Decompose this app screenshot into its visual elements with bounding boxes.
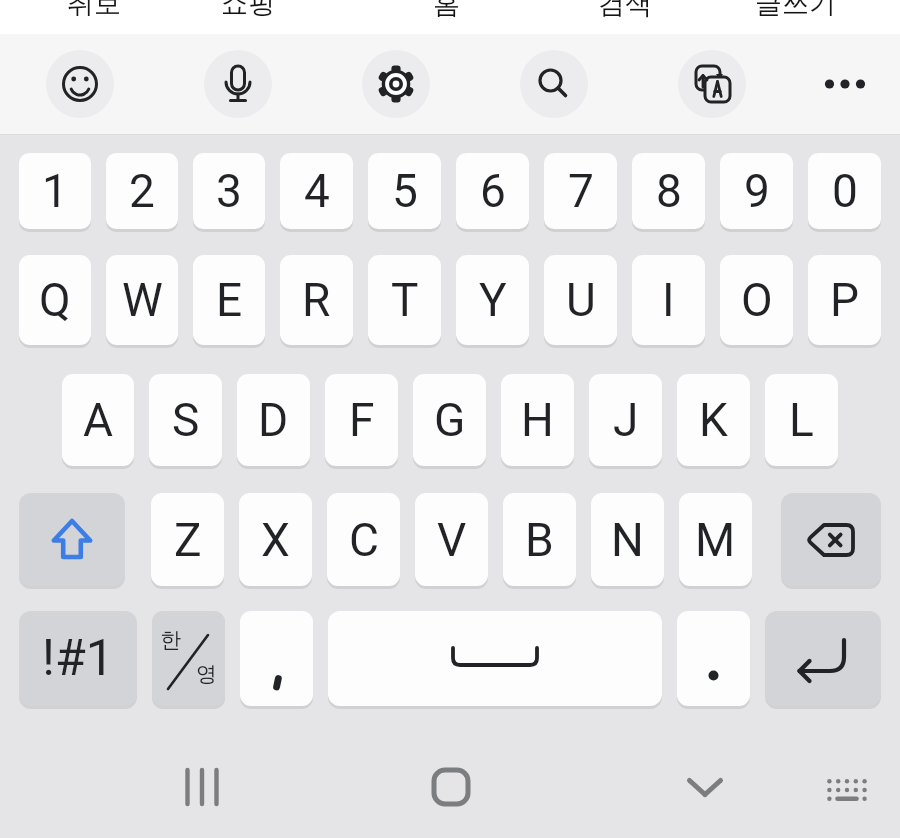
button[interactable]: 7 xyxy=(544,153,617,229)
staticText: 1 xyxy=(42,164,68,218)
button[interactable]: 4 xyxy=(280,153,353,229)
staticText: D xyxy=(258,393,289,447)
button[interactable]: Z xyxy=(151,493,224,586)
staticText: E xyxy=(216,273,243,327)
button[interactable]: M xyxy=(679,493,752,586)
button[interactable]: D xyxy=(237,374,310,466)
button[interactable]: 9 xyxy=(720,153,793,229)
staticText: H xyxy=(521,393,554,447)
staticText: 7 xyxy=(568,164,594,218)
staticText: 취보 xyxy=(67,0,121,21)
staticText: Z xyxy=(174,513,202,567)
button[interactable] xyxy=(328,611,662,706)
button[interactable]: J xyxy=(589,374,662,466)
button[interactable]: V xyxy=(415,493,488,586)
staticText: 2 xyxy=(129,164,155,218)
staticText: 영 xyxy=(196,661,217,687)
button[interactable] xyxy=(765,611,881,706)
button[interactable]: F xyxy=(325,374,398,466)
staticText: 9 xyxy=(744,164,770,218)
button[interactable]: C xyxy=(327,493,400,586)
staticText: F xyxy=(349,393,375,447)
button[interactable]: H xyxy=(501,374,574,466)
button[interactable]: G xyxy=(413,374,486,466)
staticText: N xyxy=(611,513,644,567)
staticText: 한 xyxy=(160,627,181,653)
button[interactable]: B xyxy=(503,493,576,586)
button[interactable]: K xyxy=(677,374,750,466)
button[interactable] xyxy=(675,757,735,817)
button[interactable]: 3 xyxy=(193,153,265,229)
staticText: U xyxy=(566,273,596,327)
button[interactable] xyxy=(204,50,272,118)
staticText: Y xyxy=(479,273,507,327)
staticText: 쇼핑 xyxy=(221,0,275,21)
button[interactable]: P xyxy=(808,255,881,345)
button[interactable]: O xyxy=(720,255,793,345)
button[interactable]: L xyxy=(765,374,838,466)
button[interactable]: 0 xyxy=(808,153,881,229)
button[interactable]: 6 xyxy=(456,153,529,229)
staticText: V xyxy=(437,513,467,567)
button[interactable] xyxy=(781,493,881,586)
staticText: 0 xyxy=(832,164,858,218)
staticText: 8 xyxy=(656,164,682,218)
button[interactable]: Q xyxy=(19,255,91,345)
button[interactable]: N xyxy=(591,493,664,586)
staticText: 6 xyxy=(480,164,506,218)
button[interactable] xyxy=(421,757,481,817)
button[interactable]: E xyxy=(193,255,265,345)
staticText: K xyxy=(699,393,728,447)
staticText: P xyxy=(830,273,860,327)
staticText: J xyxy=(613,393,639,447)
staticText: M xyxy=(695,513,736,567)
button[interactable]: S xyxy=(149,374,222,466)
button[interactable]: T xyxy=(368,255,441,345)
button[interactable]: 1 xyxy=(19,153,91,229)
button[interactable] xyxy=(817,760,877,820)
button[interactable] xyxy=(677,611,750,706)
staticText: X xyxy=(261,513,290,567)
staticText: L xyxy=(789,393,814,447)
button[interactable]: 한 xyxy=(152,611,225,706)
button[interactable]: 2 xyxy=(106,153,178,229)
button[interactable] xyxy=(240,611,313,706)
button[interactable] xyxy=(811,50,879,118)
staticText: 3 xyxy=(216,164,242,218)
button[interactable]: 5 xyxy=(368,153,441,229)
staticText: Q xyxy=(39,273,71,327)
staticText: 4 xyxy=(304,164,330,218)
staticText: 홈 xyxy=(433,0,460,21)
staticText: 검색 xyxy=(598,0,652,21)
staticText: T xyxy=(391,273,419,327)
button[interactable] xyxy=(678,50,746,118)
staticText: 글쓰기 xyxy=(755,0,836,21)
staticText: !#1 xyxy=(42,629,114,688)
button[interactable]: 8 xyxy=(632,153,705,229)
staticText: W xyxy=(122,273,163,327)
button[interactable] xyxy=(46,50,114,118)
button[interactable]: U xyxy=(544,255,617,345)
button[interactable]: !#1 xyxy=(19,611,137,706)
staticText: 5 xyxy=(392,164,418,218)
staticText: I xyxy=(662,273,675,327)
staticText: O xyxy=(741,273,773,327)
button[interactable]: Y xyxy=(456,255,529,345)
staticText: A xyxy=(83,393,114,447)
staticText: R xyxy=(302,273,331,327)
button[interactable]: I xyxy=(632,255,705,345)
button[interactable]: A xyxy=(62,374,134,466)
staticText: S xyxy=(172,393,200,447)
button[interactable]: R xyxy=(280,255,353,345)
button[interactable] xyxy=(172,757,232,817)
button[interactable] xyxy=(19,493,125,586)
button[interactable]: X xyxy=(239,493,312,586)
staticText: C xyxy=(349,513,379,567)
button[interactable] xyxy=(520,50,588,118)
button[interactable] xyxy=(362,50,430,118)
button[interactable]: W xyxy=(106,255,178,345)
staticText: G xyxy=(434,393,466,447)
staticText: B xyxy=(525,513,554,567)
